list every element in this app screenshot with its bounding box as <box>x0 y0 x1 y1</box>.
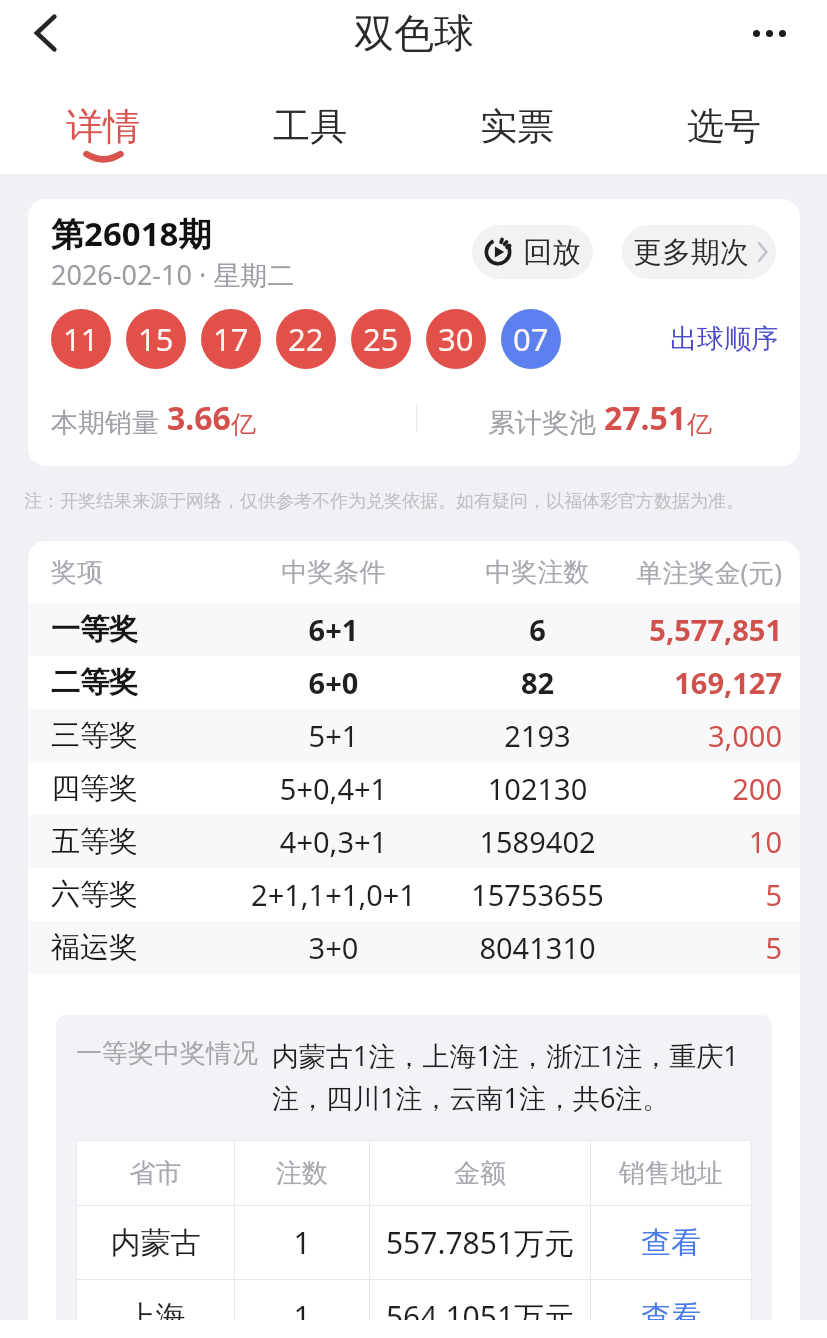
button[interactable]: 回放 <box>472 225 593 279</box>
staticText: 102130 <box>456 769 619 808</box>
staticText: 11 <box>63 318 99 360</box>
staticText: 200 <box>619 769 782 808</box>
staticText: 3.66 <box>167 396 231 440</box>
staticText: 一等奖 <box>51 611 211 648</box>
staticText: 二等奖 <box>51 664 211 701</box>
staticText: 2193 <box>456 716 619 755</box>
button[interactable]: 工具 <box>206 66 413 174</box>
staticText: 3+0 <box>211 928 456 967</box>
staticText: 2+1,1+1,0+1 <box>211 875 456 914</box>
staticText: 25 <box>363 318 399 360</box>
staticText: 亿 <box>687 409 712 440</box>
staticText: 中奖注数 <box>456 556 619 589</box>
staticText: 1589402 <box>456 822 619 861</box>
staticText: 557.7851万元 <box>370 1222 590 1263</box>
staticText: 注数 <box>235 1157 369 1190</box>
staticText: 82 <box>456 663 619 702</box>
staticText: 5+1 <box>211 716 456 755</box>
staticText: 本期销量 <box>51 403 167 440</box>
button[interactable]: 更多期次 <box>622 225 776 279</box>
staticText: 五等奖 <box>51 823 211 860</box>
staticText: 5,577,851 <box>619 610 782 649</box>
staticText: 4+0,3+1 <box>211 822 456 861</box>
staticText: 中奖条件 <box>211 556 456 589</box>
staticText: 详情 <box>66 103 140 150</box>
staticText: 工具 <box>273 103 347 150</box>
staticText: 选号 <box>687 103 761 150</box>
button[interactable]: Back <box>15 2 77 64</box>
button[interactable]: 选号 <box>620 66 827 174</box>
staticText: 5 <box>619 928 782 967</box>
staticText: 15753655 <box>456 875 619 914</box>
staticText: 8041310 <box>456 928 619 967</box>
staticText: 奖项 <box>51 556 211 589</box>
staticText: 回放 <box>523 234 581 271</box>
staticText: 1 <box>235 1222 369 1263</box>
staticText: 亿 <box>231 409 256 440</box>
staticText: 第26018期 <box>51 211 212 256</box>
staticText: 累计奖池 <box>488 403 604 440</box>
staticText: 内蒙古1注，上海1注，浙江1注，重庆1注，四川1注，云南1注，共6注。 <box>272 1037 752 1116</box>
staticText: 1 <box>235 1296 369 1320</box>
staticText: 17 <box>213 318 249 360</box>
staticText: 22 <box>288 318 324 360</box>
staticText: 3,000 <box>619 716 782 755</box>
button[interactable]: 出球顺序 <box>666 318 782 360</box>
staticText: 查看 <box>641 1224 701 1262</box>
staticText: 省市 <box>77 1157 234 1190</box>
button[interactable]: 查看 <box>591 1206 751 1279</box>
staticText: 10 <box>619 822 782 861</box>
button[interactable]: 详情 <box>0 66 206 174</box>
staticText: 169,127 <box>619 663 782 702</box>
staticText: 27.51 <box>604 396 687 440</box>
staticText: 15 <box>138 318 174 360</box>
staticText: 内蒙古 <box>77 1224 234 1262</box>
button[interactable]: More options <box>738 2 800 64</box>
staticText: 福运奖 <box>51 929 211 966</box>
staticText: 双色球 <box>354 8 474 58</box>
button[interactable]: 查看 <box>591 1280 751 1320</box>
staticText: 更多期次 <box>633 234 749 271</box>
staticText: 一等奖中奖情况 <box>76 1037 258 1070</box>
staticText: 金额 <box>370 1157 590 1190</box>
staticText: 四等奖 <box>51 770 211 807</box>
staticText: 六等奖 <box>51 876 211 913</box>
staticText: 6 <box>456 610 619 649</box>
staticText: 单注奖金(元) <box>619 554 782 590</box>
button[interactable]: 实票 <box>413 66 620 174</box>
staticText: 注：开奖结果来源于网络，仅供参考不作为兑奖依据。如有疑问，以福体彩官方数据为准。 <box>24 490 744 513</box>
staticText: 30 <box>438 318 474 360</box>
staticText: 2026-02-10 · 星期二 <box>51 256 295 293</box>
staticText: 销售地址 <box>591 1157 751 1190</box>
staticText: 6+0 <box>211 663 456 702</box>
staticText: 07 <box>513 318 549 360</box>
staticText: 5+0,4+1 <box>211 769 456 808</box>
staticText: 出球顺序 <box>670 322 778 356</box>
staticText: 实票 <box>480 103 554 150</box>
staticText: 查看 <box>641 1298 701 1320</box>
staticText: 三等奖 <box>51 717 211 754</box>
staticText: 6+1 <box>211 610 456 649</box>
staticText: 5 <box>619 875 782 914</box>
staticText: 上海 <box>77 1298 234 1320</box>
staticText: 564.1051万元 <box>370 1296 590 1320</box>
